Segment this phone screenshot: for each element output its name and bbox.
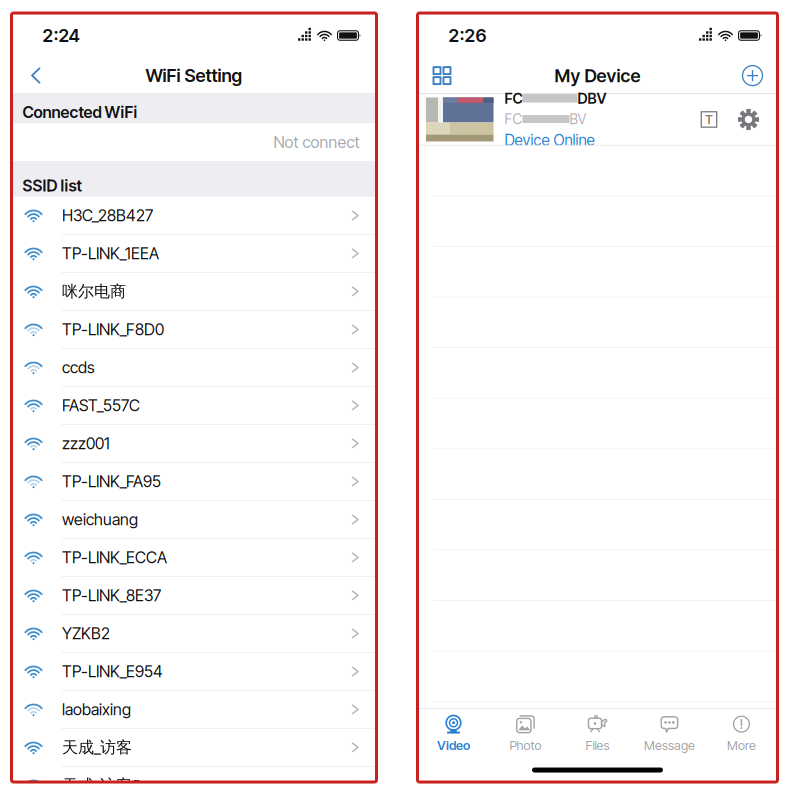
staticText: DBV [577, 89, 606, 107]
button[interactable]: zzz001 [11, 425, 376, 463]
button[interactable]: Add device [727, 56, 777, 96]
staticText: FC [504, 111, 522, 127]
staticText: TP-LINK_8E37 [62, 586, 161, 605]
staticText: TP-LINK_ECCA [62, 548, 167, 567]
button[interactable]: More [705, 709, 777, 758]
button[interactable]: Device settings [727, 94, 777, 145]
staticText: TP-LINK_FA95 [62, 472, 161, 491]
button[interactable]: TP-LINK_8E37 [11, 577, 376, 615]
button[interactable]: weichuang [11, 501, 376, 539]
staticText: laobaixing [62, 700, 131, 719]
button[interactable]: Photo [489, 709, 561, 758]
staticText: Device Online [504, 131, 594, 149]
button[interactable]: TP-LINK_E954 [11, 653, 376, 691]
button[interactable]: YZKB2 [11, 615, 376, 653]
staticText: Connected WiFi [22, 102, 137, 122]
staticText: YZKB2 [62, 624, 110, 643]
staticText: TP-LINK_F8D0 [62, 320, 164, 339]
button[interactable]: Files [561, 709, 633, 758]
button[interactable]: FAST_557C [11, 387, 376, 425]
staticText: Video [437, 738, 470, 753]
staticText: FAST_557C [62, 396, 140, 415]
staticText: WiFi Setting [145, 65, 242, 86]
staticText: BV [569, 111, 586, 127]
staticText: Not connect [273, 132, 359, 152]
button[interactable]: TP-LINK_1EEA [11, 235, 376, 273]
staticText: More [727, 738, 756, 753]
staticText: 咪尔电商 [62, 281, 126, 301]
staticText: Files [585, 738, 609, 753]
button[interactable]: Grid view [417, 56, 465, 96]
staticText: FC [504, 89, 522, 107]
button[interactable]: Back [11, 58, 54, 93]
staticText: H3C_28B427 [62, 206, 153, 225]
staticText: My Device [554, 65, 640, 86]
staticText: T [705, 111, 713, 127]
staticText: 天成_访客2 [62, 775, 141, 792]
staticText: zzz001 [62, 434, 110, 453]
button[interactable]: TP-LINK_FA95 [11, 463, 376, 501]
button[interactable]: 咪尔电商 [11, 273, 376, 311]
staticText: 2:24 [42, 25, 79, 46]
staticText: Photo [509, 738, 541, 753]
button[interactable]: 天成_访客 [11, 729, 376, 767]
button[interactable]: Rename device [690, 94, 727, 145]
button[interactable]: TP-LINK_ECCA [11, 539, 376, 577]
button[interactable]: 天成_访客2 [11, 767, 376, 792]
staticText: Message [644, 738, 695, 753]
staticText: 天成_访客 [62, 737, 132, 757]
staticText: SSID list [22, 176, 81, 195]
staticText: weichuang [62, 510, 138, 529]
button[interactable]: laobaixing [11, 691, 376, 729]
button[interactable]: H3C_28B427 [11, 197, 376, 235]
button[interactable]: TP-LINK_F8D0 [11, 311, 376, 349]
staticText: ccds [62, 358, 95, 377]
button[interactable]: ccds [11, 349, 376, 387]
staticText: 2:26 [448, 25, 486, 46]
button[interactable]: Message [633, 709, 705, 758]
staticText: TP-LINK_1EEA [62, 244, 159, 263]
button[interactable]: Video [417, 709, 489, 758]
staticText: TP-LINK_E954 [62, 662, 163, 681]
